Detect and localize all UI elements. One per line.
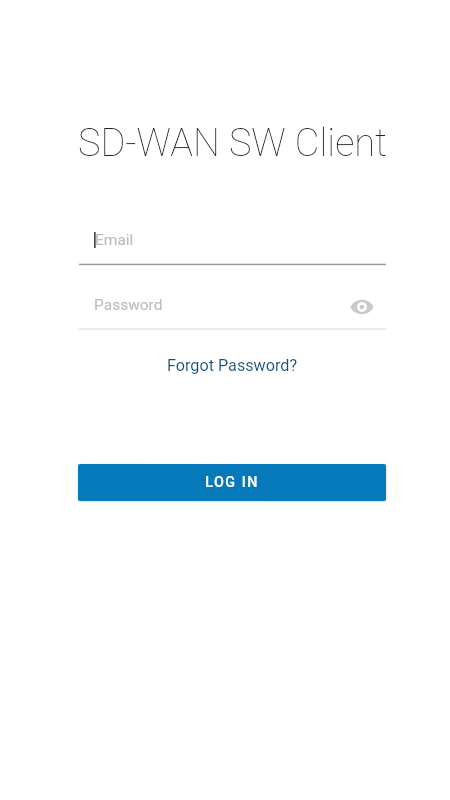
button[interactable]: LOG IN (78, 464, 386, 501)
button[interactable]: Password (79, 287, 386, 330)
button[interactable]: Forgot Password? (159, 352, 306, 379)
button[interactable]: Email (79, 222, 386, 265)
staticText: LOG IN (205, 474, 259, 491)
staticText: SD-WAN SW Client (78, 121, 388, 166)
staticText: Email (95, 231, 134, 249)
staticText: Password (94, 296, 163, 314)
button[interactable]: Show password (345, 290, 379, 324)
